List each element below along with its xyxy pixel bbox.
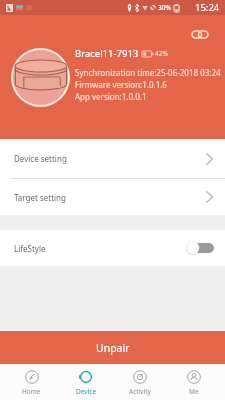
staticText: Synchronization time:25-06-2018 03:24 xyxy=(75,67,221,78)
button[interactable]: Activity xyxy=(113,364,167,400)
button[interactable]: Unpair xyxy=(0,331,225,364)
button[interactable]: Home xyxy=(4,364,59,400)
staticText: Unpair xyxy=(96,341,130,355)
button[interactable]: LifeStyle xyxy=(0,230,225,266)
staticText: Firmware version:1.0.1.6 xyxy=(75,79,167,90)
staticText: Home xyxy=(22,387,41,396)
staticText: 42% xyxy=(155,49,168,58)
staticText: Activity xyxy=(129,387,151,396)
staticText: LifeStyle xyxy=(14,243,46,254)
staticText: 30% xyxy=(158,3,172,12)
button[interactable]: Target setting xyxy=(0,179,225,215)
button[interactable]: Device setting xyxy=(0,139,225,178)
staticText: App version:1.0.0.1 xyxy=(75,91,147,102)
staticText: 15:24 xyxy=(195,1,220,14)
staticText: Me xyxy=(189,387,199,396)
staticText: Device xyxy=(76,387,97,396)
button[interactable]: Device xyxy=(59,364,113,400)
button[interactable]: Unbind device xyxy=(189,23,211,45)
staticText: Bracel11-7913 xyxy=(75,47,139,60)
button[interactable]: Me xyxy=(167,364,221,400)
staticText: Device setting xyxy=(14,153,67,164)
button[interactable]: Device image xyxy=(11,48,70,107)
staticText: Target setting xyxy=(14,192,66,203)
